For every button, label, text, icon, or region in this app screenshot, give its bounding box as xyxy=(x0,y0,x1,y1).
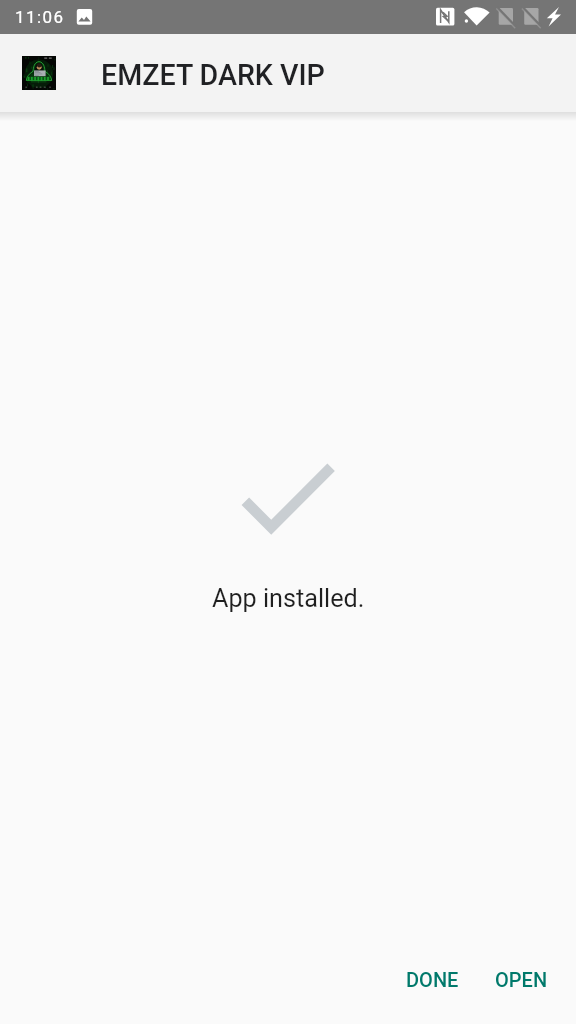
staticText: EMZET DARK VIP xyxy=(101,58,325,92)
staticText: DONE xyxy=(406,968,459,991)
other: App icon xyxy=(22,56,56,90)
staticText: 11:06 xyxy=(15,7,65,27)
button[interactable]: OPEN xyxy=(479,955,564,1003)
button[interactable]: DONE xyxy=(390,955,475,1003)
staticText: OPEN xyxy=(495,968,548,991)
staticText: App installed. xyxy=(212,584,365,614)
